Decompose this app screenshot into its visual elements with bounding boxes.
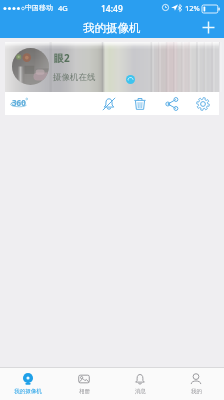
staticText: 相册: [79, 388, 90, 395]
button[interactable]: 我的: [168, 368, 224, 400]
button[interactable]: 我的摄像机: [0, 368, 56, 400]
button[interactable]: Share: [162, 94, 181, 113]
button[interactable]: 消息: [112, 368, 168, 400]
button[interactable]: Add camera: [197, 17, 219, 38]
staticText: 中国移动: [25, 3, 53, 12]
staticText: 我的摄像机: [83, 21, 141, 35]
button[interactable]: 相册: [56, 368, 112, 400]
staticText: 摄像机在线: [53, 72, 96, 83]
button[interactable]: 眼2: [5, 42, 219, 115]
staticText: 360: [12, 97, 26, 108]
staticText: 我的: [191, 388, 202, 395]
staticText: 我的摄像机: [14, 388, 42, 395]
button[interactable]: Delete: [130, 94, 149, 113]
staticText: 14:49: [101, 3, 123, 15]
staticText: 12%: [185, 3, 200, 13]
staticText: 4G: [58, 3, 68, 13]
staticText: 眼2: [54, 51, 70, 65]
button[interactable]: Settings: [193, 94, 212, 113]
button[interactable]: Mute notifications: [99, 94, 118, 113]
staticText: 消息: [135, 388, 146, 395]
